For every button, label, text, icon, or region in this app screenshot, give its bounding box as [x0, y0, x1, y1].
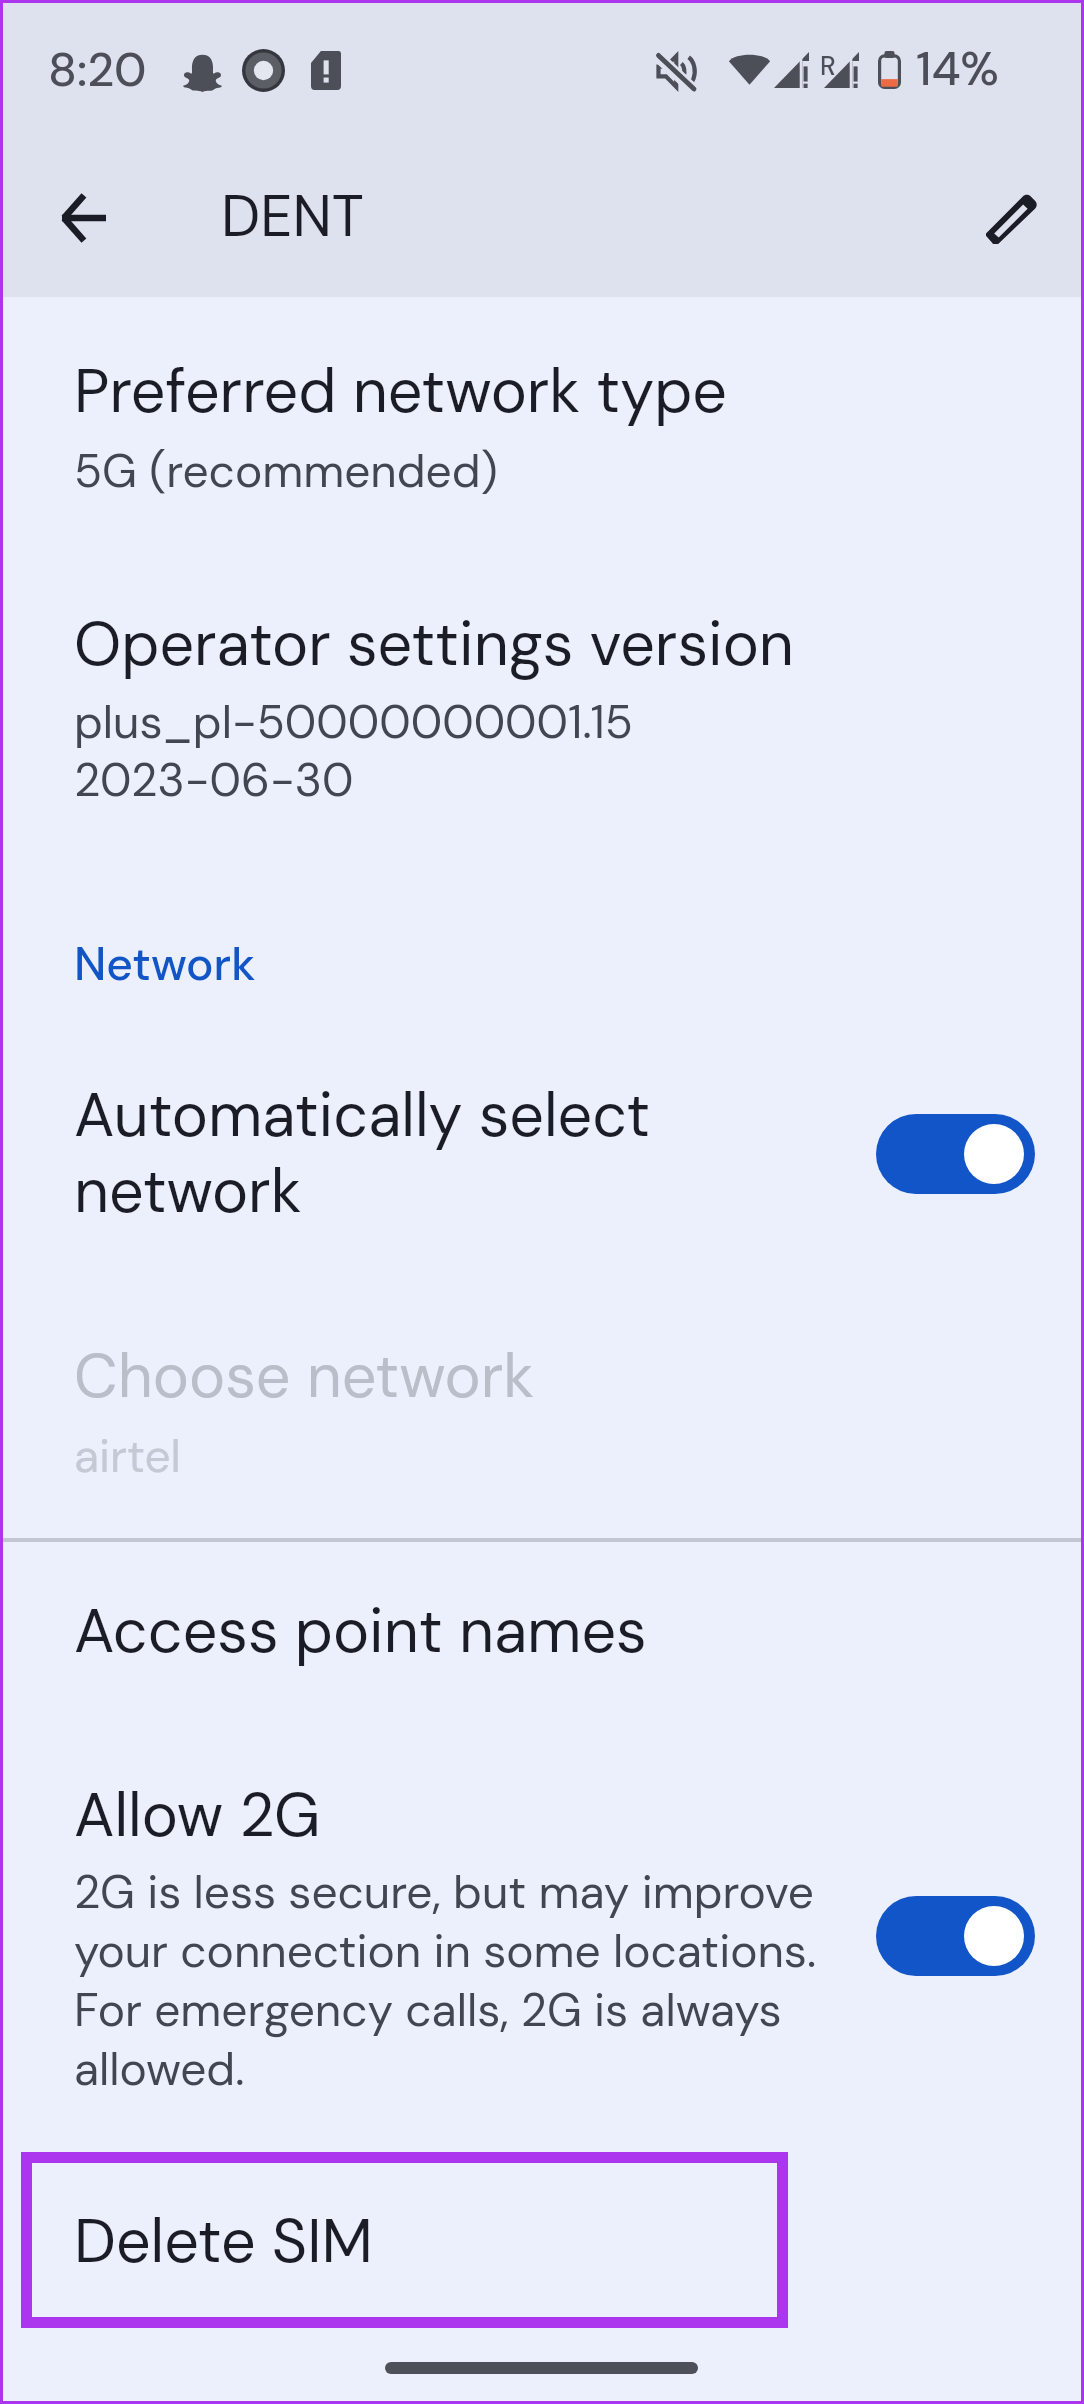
button[interactable]: Allow 2G [0, 1754, 1084, 2114]
staticText: Automatically select network [74, 1078, 651, 1230]
button[interactable]: Operator settings version [0, 577, 1084, 852]
staticText: 14% [916, 38, 999, 99]
staticText: 2G is less secure, but may improve your … [74, 1863, 844, 2099]
button[interactable]: On [876, 1896, 1035, 1976]
staticText: Access point names [74, 1600, 647, 1668]
staticText: DENT [221, 179, 364, 253]
staticText: 5G (recommended) [74, 447, 498, 499]
staticText: Preferred network type [74, 360, 728, 428]
button[interactable]: Preferred network type [0, 324, 1084, 539]
button[interactable]: Delete SIM [0, 2152, 1084, 2328]
staticText: 8:20 [48, 39, 147, 100]
button[interactable]: Access point names [0, 1565, 1084, 1715]
staticText: Operator settings version [74, 613, 794, 681]
button[interactable]: Navigate up [33, 168, 133, 268]
staticText: Network [74, 940, 256, 992]
staticText: Choose network [74, 1345, 535, 1413]
staticText: airtel [74, 1432, 181, 1484]
staticText: plus_pl-50000000001.15 2023-06-30 [74, 694, 633, 810]
staticText: Delete SIM [74, 2210, 373, 2278]
button[interactable]: Rename SIM [962, 167, 1062, 267]
staticText: Allow 2G [74, 1784, 321, 1852]
button[interactable]: On [876, 1114, 1035, 1194]
staticText: R [820, 49, 836, 83]
button[interactable]: Automatically select network [0, 1040, 1084, 1270]
